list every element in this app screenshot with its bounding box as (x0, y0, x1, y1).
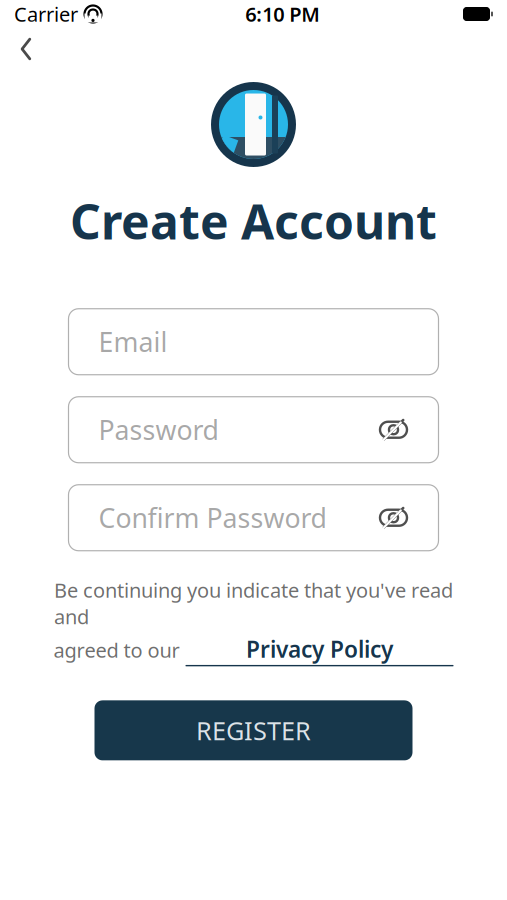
staticText: Email (98, 324, 167, 359)
staticText: Password (98, 412, 218, 447)
staticText: 6:10 PM (245, 1, 320, 27)
staticText: agreed to our (53, 637, 179, 663)
button[interactable]: Back (4, 29, 48, 69)
button[interactable]: Email (68, 309, 438, 375)
staticText: Be continuing you indicate that you've r… (54, 577, 453, 630)
button[interactable]: Privacy Policy (185, 634, 453, 666)
staticText: Confirm Password (98, 500, 326, 535)
staticText: REGISTER (196, 713, 311, 747)
staticText: Create Account (70, 189, 437, 253)
staticText: Privacy Policy (246, 634, 393, 664)
button[interactable]: REGISTER (94, 700, 412, 760)
staticText: Carrier (14, 1, 78, 27)
button[interactable]: Confirm Password (68, 485, 438, 551)
button[interactable]: Password (68, 397, 438, 463)
